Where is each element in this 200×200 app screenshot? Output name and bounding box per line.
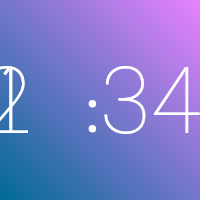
staticText: 34 [100,48,200,156]
staticText: 2 [0,48,33,156]
button[interactable]: Watch face 12:34 [0,0,200,200]
